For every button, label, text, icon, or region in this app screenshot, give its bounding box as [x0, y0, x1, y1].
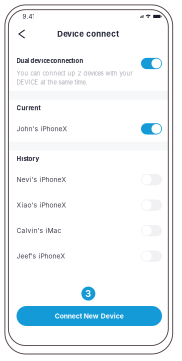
staticText: Jeef's iPhoneX — [16, 252, 65, 260]
staticText: Current — [16, 104, 40, 112]
staticText: Connect New Device — [55, 312, 124, 320]
button[interactable]: Xiao's iPhoneX — [8, 192, 168, 218]
staticText: Calvin's iMac — [16, 227, 61, 235]
staticText: Device connect — [57, 29, 119, 39]
staticText: Dual device connection — [16, 57, 83, 64]
staticText: Xiao's iPhoneX — [16, 201, 66, 209]
button[interactable]: John's iPhoneX — [8, 116, 168, 142]
staticText: 3 — [85, 288, 91, 299]
staticText: John's iPhoneX — [16, 125, 67, 133]
staticText: 9.41 — [22, 13, 34, 20]
button[interactable]: Calvin's iMac — [8, 218, 168, 243]
staticText: You can connect up 2 devices with your — [16, 70, 132, 77]
staticText: Nevi's iPhoneX — [16, 176, 66, 184]
button[interactable]: Back — [15, 26, 28, 42]
button[interactable]: Jeef's iPhoneX — [8, 243, 168, 269]
staticText: DEVICE at the same time. — [16, 79, 87, 86]
staticText: History — [16, 155, 39, 162]
button[interactable]: Nevi's iPhoneX — [8, 167, 168, 192]
button[interactable]: Connect New Device — [16, 306, 162, 326]
